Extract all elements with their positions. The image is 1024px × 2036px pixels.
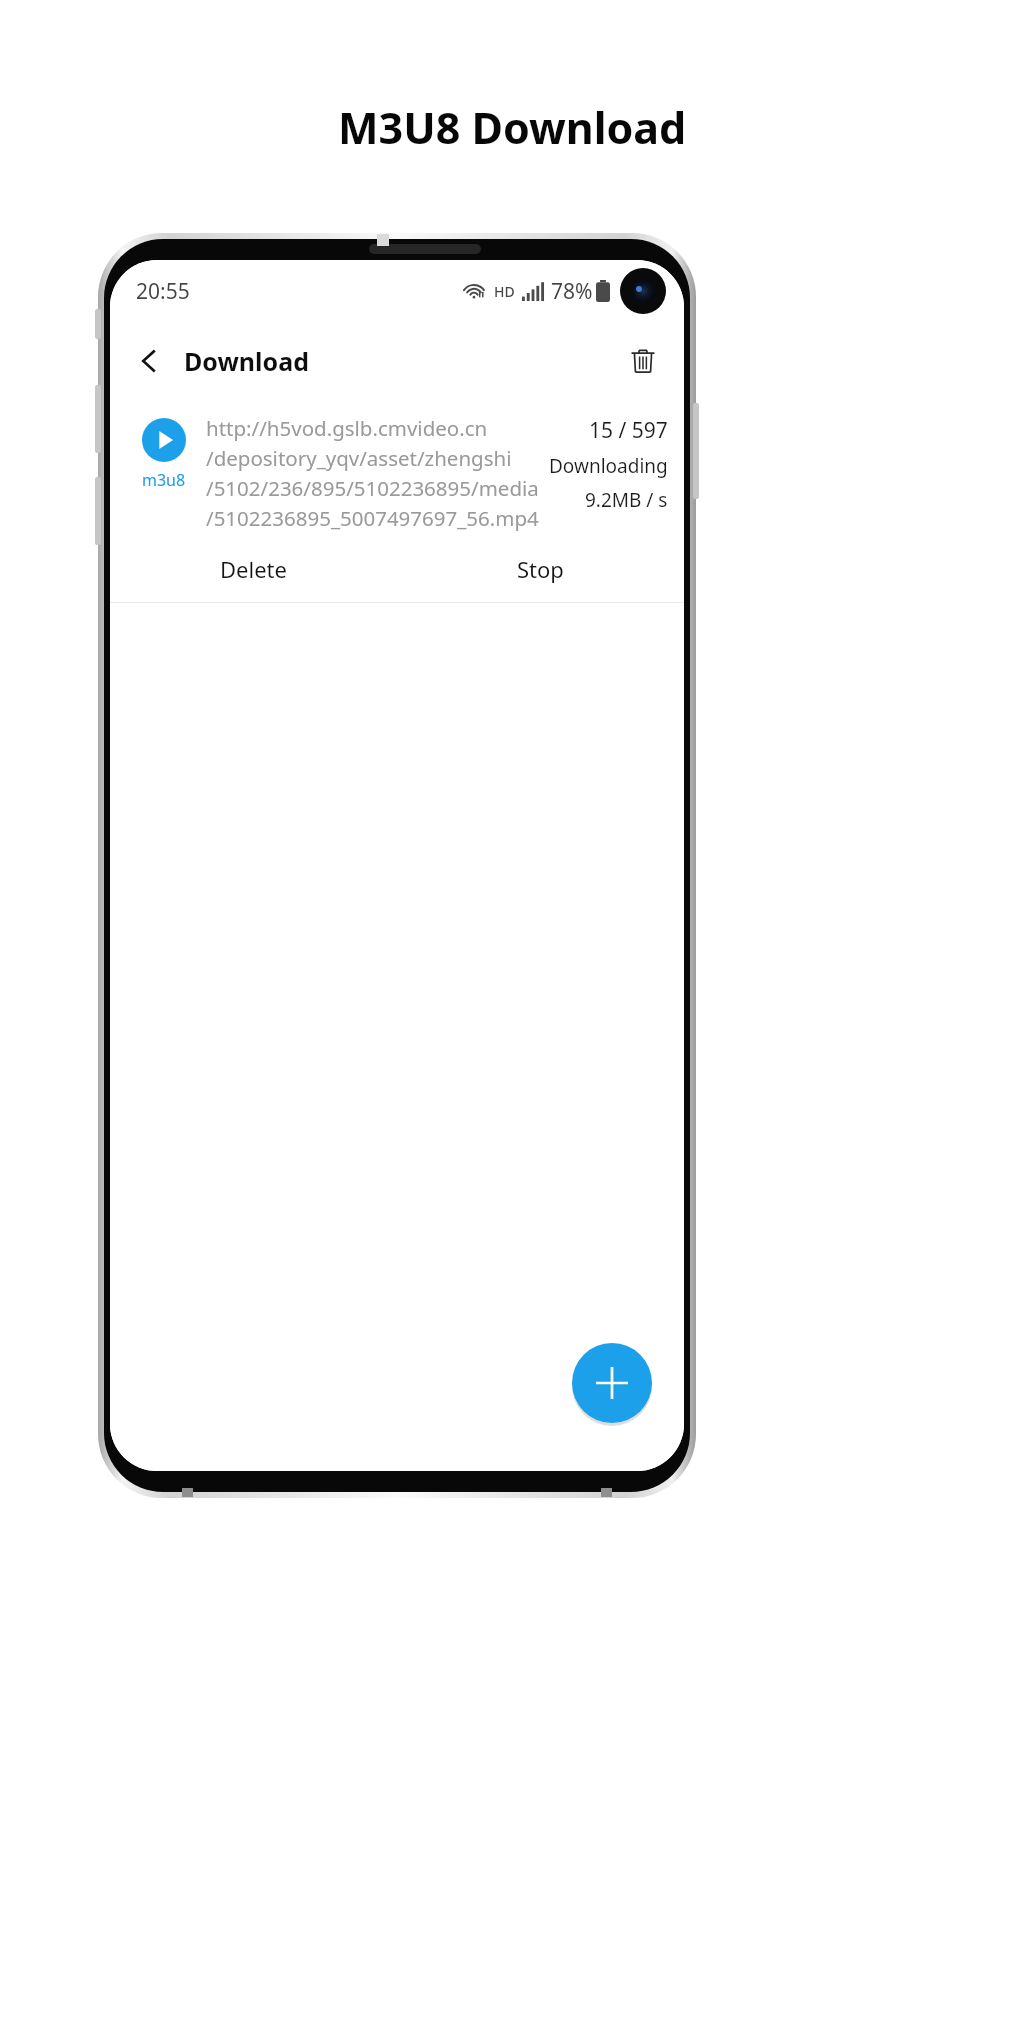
staticText: Downloading bbox=[549, 453, 668, 479]
staticText: M3U8 Download bbox=[338, 98, 687, 157]
staticText: Download bbox=[184, 344, 309, 378]
staticText: m3u8 bbox=[142, 469, 186, 491]
button[interactable]: Delete all bbox=[616, 334, 670, 388]
button[interactable]: Add download bbox=[572, 1343, 652, 1423]
button[interactable]: Delete bbox=[110, 536, 397, 602]
staticText: 9.2MB / s bbox=[585, 487, 668, 513]
staticText: 20:55 bbox=[136, 277, 190, 306]
staticText: Delete bbox=[220, 554, 287, 584]
staticText: Stop bbox=[517, 554, 564, 584]
staticText: 78% bbox=[551, 277, 593, 306]
button[interactable]: m3u8 bbox=[110, 400, 684, 536]
button[interactable]: Stop bbox=[397, 536, 684, 602]
staticText: 15 / 597 bbox=[589, 416, 668, 445]
staticText: HD bbox=[494, 282, 515, 301]
staticText: http://h5vod.gslb.cmvideo.cn /depository… bbox=[206, 414, 541, 532]
button[interactable]: Back bbox=[122, 334, 176, 388]
